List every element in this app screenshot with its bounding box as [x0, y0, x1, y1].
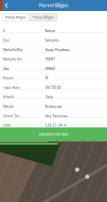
- staticText: Tapu Alanı: [3, 85, 20, 90]
- staticText: 10: [45, 76, 48, 80]
- staticText: Selçuklu: [45, 38, 59, 42]
- staticText: İlçe: [3, 38, 9, 42]
- button[interactable]: Hisse Bilgisi: [30, 13, 57, 21]
- staticText: Mahalle/Köy: [3, 47, 23, 52]
- button[interactable]: Back: [0, 0, 13, 11]
- staticText: Konya: [45, 29, 55, 33]
- staticText: Hisse Bilgisi: [33, 15, 54, 19]
- staticText: Parsel Bilgisi: [39, 3, 68, 8]
- staticText: Zemin Tip: [3, 114, 19, 118]
- button[interactable]: Parsellerime ekle: [0, 127, 107, 141]
- staticText: Parsel: [3, 76, 13, 80]
- staticText: Ada: [3, 66, 9, 71]
- staticText: Aşağı Pınarbaşı: [45, 47, 70, 52]
- staticText: 39984: [45, 66, 55, 71]
- staticText: Parsel Bilgisi: [5, 15, 26, 19]
- button[interactable]: Parsel Bilgisi: [2, 13, 29, 21]
- staticText: Rızakavak: [45, 104, 62, 109]
- staticText: İl: [3, 29, 5, 33]
- staticText: Mahalle No: [3, 57, 22, 61]
- staticText: Mevkii: [3, 104, 14, 109]
- staticText: 138187: [45, 57, 55, 61]
- staticText: Ana Taşınmaz: [45, 114, 68, 118]
- staticText: Parsellerime ekle: [39, 132, 68, 137]
- staticText: L29-D-24-A: [45, 123, 66, 127]
- staticText: Tarla: [45, 95, 53, 99]
- staticText: 39.735,82: [45, 85, 61, 90]
- staticText: Nitelik: [3, 95, 14, 99]
- staticText: Pafta: [3, 123, 11, 127]
